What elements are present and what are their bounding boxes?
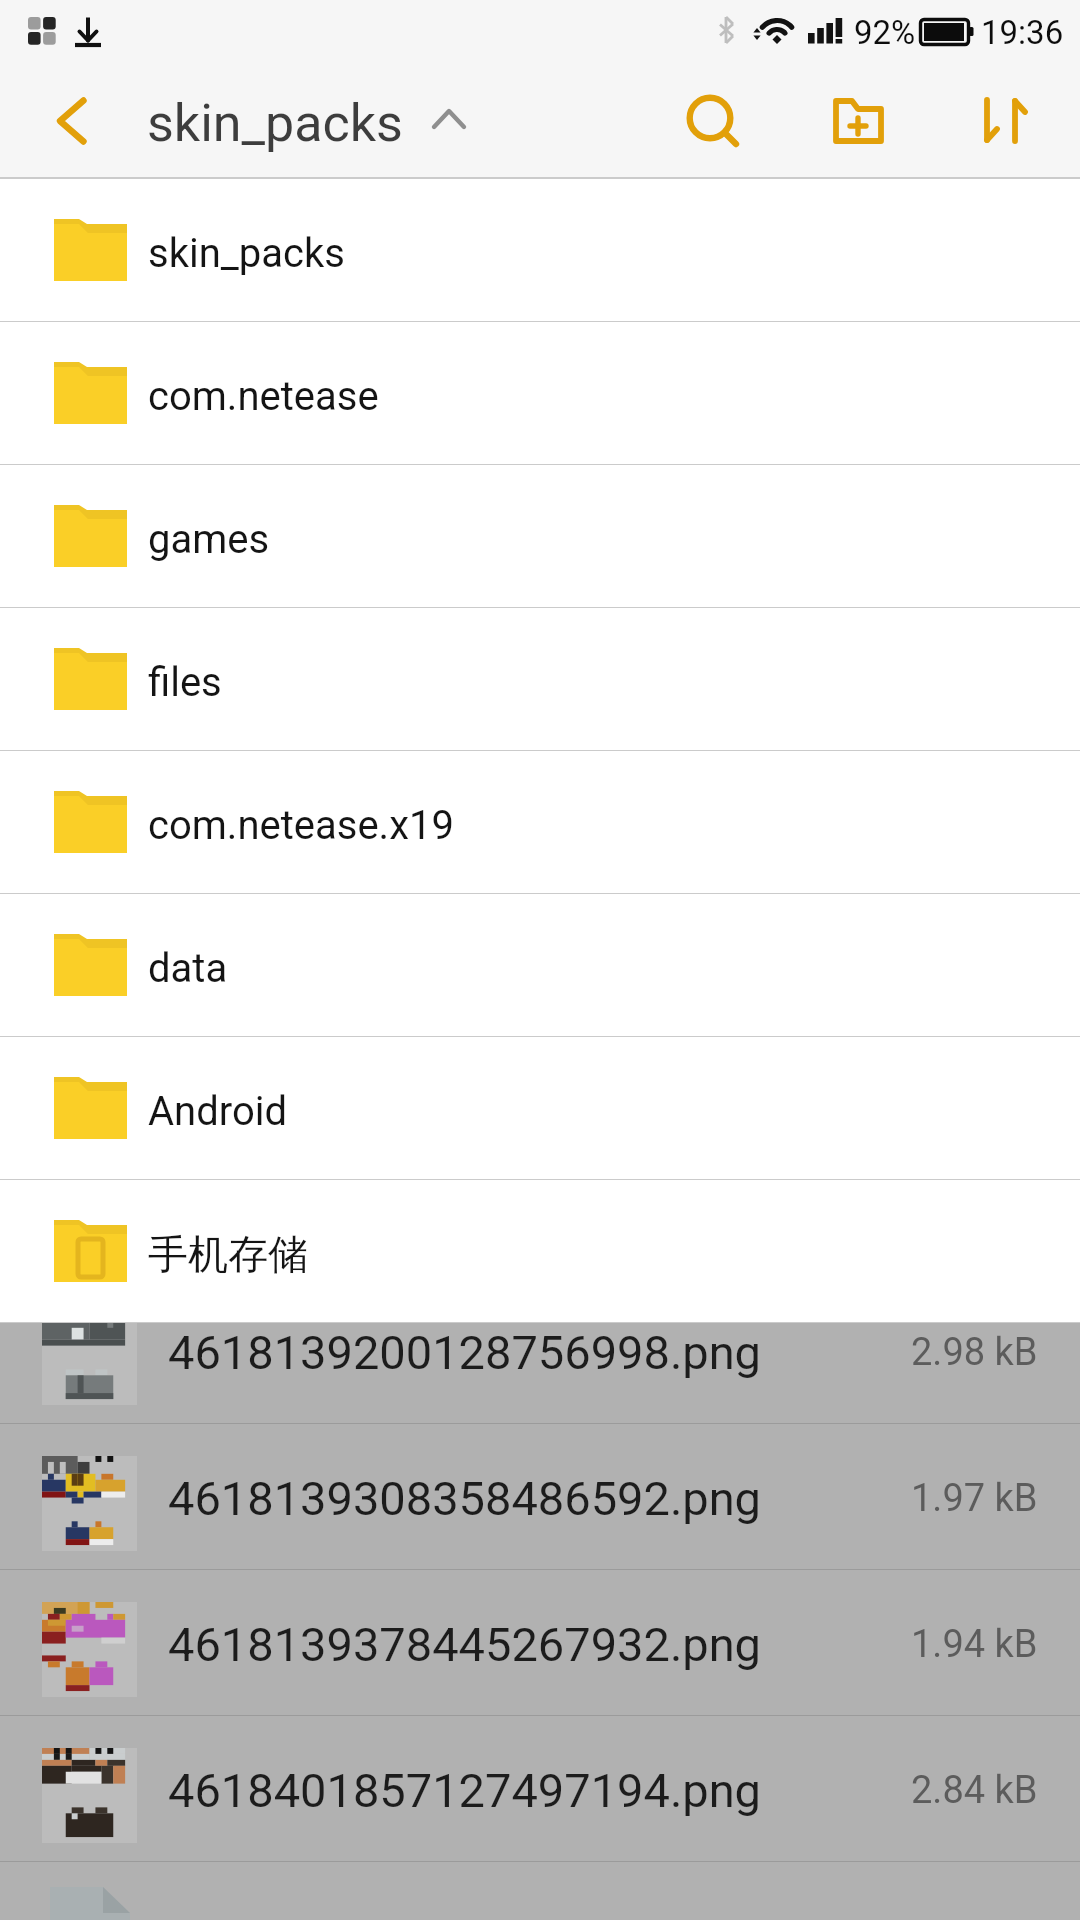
button[interactable]: com.netease.x19 [0, 751, 1080, 893]
button[interactable]: 4618139308358486592.png [0, 1424, 1080, 1569]
staticText: com.netease.x19 [148, 802, 454, 849]
button[interactable]: Android [0, 1037, 1080, 1179]
button[interactable]: data [0, 894, 1080, 1036]
button[interactable]: skin_packs [147, 70, 477, 177]
button[interactable]: skin_packs [0, 179, 1080, 321]
button[interactable]: Search [650, 70, 770, 177]
button[interactable]: 手机存储 [0, 1180, 1080, 1322]
staticText: 4618139378445267932.png [168, 1617, 911, 1672]
button[interactable]: 4618401857127497194.png [0, 1716, 1080, 1861]
button[interactable]: Back [13, 70, 133, 177]
staticText: skin_packs [147, 93, 403, 154]
button[interactable]: files [0, 608, 1080, 750]
staticText: 4618139308358486592.png [168, 1471, 911, 1526]
staticText: data [148, 945, 228, 992]
button[interactable]: Sort [950, 70, 1070, 177]
staticText: 2.84 kB [911, 1768, 1038, 1813]
button[interactable]: 4618139378445267932.png [0, 1570, 1080, 1715]
staticText: 1.94 kB [911, 1622, 1038, 1667]
staticText: 手机存储 [148, 1229, 308, 1279]
staticText: games [148, 516, 270, 563]
staticText: 2.98 kB [911, 1330, 1038, 1375]
button[interactable]: 4618139200128756998.png [0, 1323, 1080, 1423]
staticText: skin_packs [148, 230, 345, 277]
staticText: Android [148, 1088, 288, 1135]
staticText: files [148, 659, 222, 706]
staticText: 19:36 [981, 13, 1064, 52]
staticText: 4618139200128756998.png [168, 1325, 911, 1380]
staticText: 1.97 kB [911, 1476, 1038, 1521]
button[interactable]: games [0, 465, 1080, 607]
staticText: com.netease [148, 373, 379, 420]
button[interactable]: com.netease [0, 322, 1080, 464]
button[interactable]: New folder [800, 70, 920, 177]
staticText: 4618401857127497194.png [168, 1763, 911, 1818]
staticText: 92% [854, 13, 916, 52]
